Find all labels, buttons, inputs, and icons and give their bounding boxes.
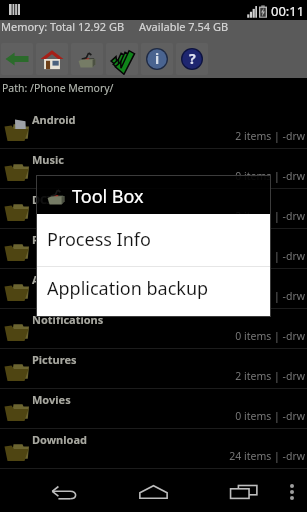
staticText: Available 7.54 GB: [139, 19, 229, 34]
staticText: Movies: [32, 392, 71, 407]
staticText: Pictures: [32, 352, 77, 367]
button[interactable]: Notifications: [0, 309, 307, 349]
staticText: Path: /Phone Memory/: [2, 81, 114, 95]
staticText: 0 items | -drw: [235, 249, 305, 263]
staticText: 00:11: [271, 2, 305, 20]
button[interactable]: Process Info: [36, 214, 271, 266]
button[interactable]: Android: [0, 109, 307, 149]
button[interactable]: Podcasts: [0, 229, 307, 269]
staticText: Download: [32, 432, 87, 447]
button[interactable]: Music: [0, 149, 307, 189]
button[interactable]: Pictures: [0, 349, 307, 389]
button[interactable]: Movies: [0, 389, 307, 429]
button[interactable]: Tool Box: [71, 43, 103, 75]
button[interactable]: Home: [36, 43, 68, 75]
button[interactable]: Help: [176, 43, 208, 75]
staticText: i: [155, 49, 160, 68]
staticText: 2 items | -drw: [235, 209, 305, 223]
button[interactable]: Recents: [222, 471, 266, 512]
staticText: 24 items | -drw: [229, 449, 305, 463]
button[interactable]: Application backup: [36, 267, 271, 316]
button[interactable]: Alarms: [0, 269, 307, 309]
staticText: 0 items | -drw: [235, 289, 305, 303]
staticText: Notifications: [32, 312, 104, 327]
staticText: 2 items | -drw: [235, 129, 305, 143]
staticText: Podcasts: [32, 232, 81, 247]
button[interactable]: Back: [1, 43, 33, 75]
staticText: Alarms: [32, 272, 71, 287]
button[interactable]: DCIM: [0, 189, 307, 229]
button[interactable]: More options: [280, 471, 304, 512]
button[interactable]: Home: [131, 471, 175, 512]
button[interactable]: Select all: [106, 43, 138, 75]
button[interactable]: Info: [141, 43, 173, 75]
staticText: Android: [32, 112, 76, 127]
staticText: 0 items | -drw: [235, 329, 305, 343]
staticText: Memory: Total 12.92 GB: [1, 19, 125, 34]
staticText: ?: [189, 49, 196, 68]
staticText: 0 items | -drw: [235, 169, 305, 183]
staticText: 2 items | -drw: [235, 369, 305, 383]
staticText: Music: [32, 152, 65, 167]
button[interactable]: Download: [0, 429, 307, 469]
button[interactable]: Back: [42, 472, 86, 512]
staticText: DCIM: [32, 192, 62, 207]
staticText: 0 items | -drw: [235, 409, 305, 423]
staticText: Process Info: [47, 227, 151, 252]
staticText: Application backup: [47, 276, 209, 301]
staticText: Tool Box: [72, 184, 144, 209]
